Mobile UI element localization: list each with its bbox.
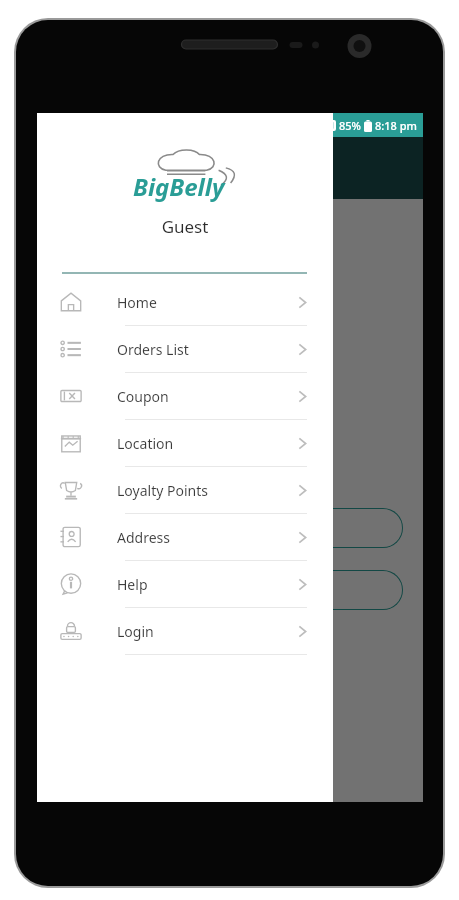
button[interactable]: Login	[37, 608, 333, 654]
button[interactable]: Coupon	[37, 373, 333, 419]
button[interactable]: Address	[37, 514, 333, 560]
button[interactable]: Help	[37, 561, 333, 607]
staticText: 8:18 pm	[375, 118, 417, 133]
staticText: Coupon	[117, 387, 298, 406]
staticText: 85%	[339, 118, 361, 133]
button[interactable]: Delivery Order	[57, 508, 403, 548]
staticText: Loyalty Points	[117, 481, 298, 500]
staticText: Address	[117, 528, 298, 547]
button[interactable]: Loyalty Points	[37, 467, 333, 513]
button[interactable]: Orders List	[37, 326, 333, 372]
staticText: Start your order	[57, 452, 172, 472]
staticText: Help	[117, 575, 298, 594]
staticText: Login	[117, 622, 298, 641]
staticText: Home	[117, 293, 298, 312]
staticText: Orders List	[117, 340, 298, 359]
button[interactable]: Take Away / Pickup	[57, 570, 403, 610]
staticText: BigBelly	[133, 170, 225, 203]
button[interactable]: Location	[37, 420, 333, 466]
button[interactable]: Home	[37, 279, 333, 325]
staticText: Delicious food, the one that makes you w…	[57, 282, 302, 347]
staticText: Location	[117, 434, 298, 453]
staticText: Guest	[37, 215, 333, 238]
